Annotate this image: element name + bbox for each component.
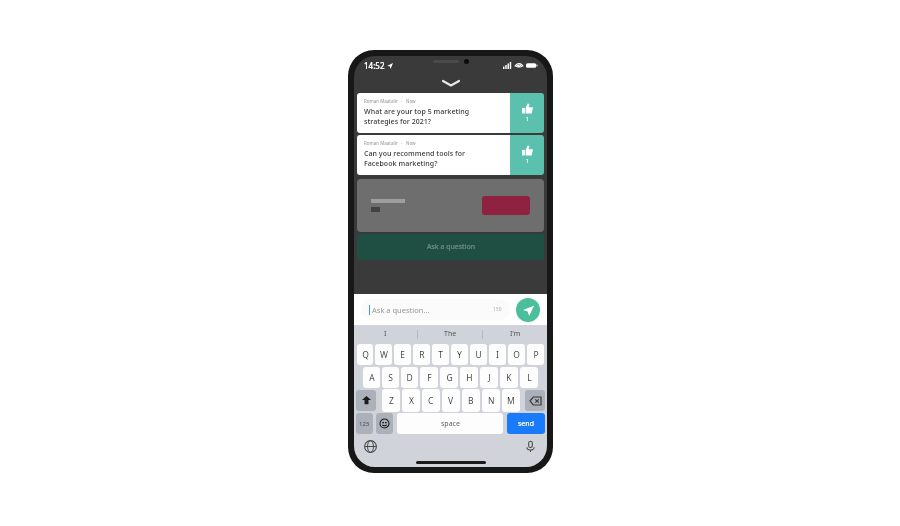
staticText: 1 (526, 116, 529, 123)
button[interactable]: T (432, 344, 449, 365)
button[interactable]: L (520, 367, 538, 388)
staticText: A (369, 372, 375, 384)
button[interactable]: O (508, 344, 525, 365)
staticText: I (496, 349, 499, 361)
button[interactable]: X (402, 389, 420, 412)
staticText: Z (389, 395, 394, 407)
button[interactable]: N (482, 389, 500, 412)
button[interactable]: I'm (483, 325, 547, 343)
button[interactable]: Shift (356, 390, 376, 411)
button[interactable]: A (363, 367, 380, 388)
staticText: Facebook marketing? (364, 159, 438, 169)
staticText: The (444, 329, 457, 339)
staticText: Ask a question (427, 242, 475, 252)
staticText: L (527, 372, 532, 384)
button[interactable]: Roman Maatalir (357, 93, 544, 133)
button[interactable]: Z (382, 389, 400, 412)
button[interactable]: E (394, 344, 411, 365)
button[interactable]: Q (357, 344, 373, 365)
staticText: Ask a question... (372, 305, 430, 315)
staticText: Can you recommend tools for (364, 149, 466, 159)
staticText: space (441, 419, 460, 429)
button[interactable]: Dictation (524, 440, 537, 453)
staticText: What are your top 5 marketing (364, 107, 470, 117)
button[interactable]: K (500, 367, 518, 388)
staticText: R (419, 349, 425, 361)
staticText: send (518, 419, 534, 429)
staticText: E (400, 349, 405, 361)
staticText: P (533, 349, 539, 361)
staticText: 123 (359, 420, 370, 428)
staticText: Q (362, 349, 369, 361)
staticText: Now (406, 140, 416, 146)
button[interactable]: F (420, 367, 438, 388)
button[interactable]: send (507, 413, 545, 434)
staticText: O (513, 349, 520, 361)
button[interactable]: U (470, 344, 487, 365)
staticText: M (507, 395, 515, 407)
button[interactable]: 123 (356, 413, 373, 434)
button[interactable]: P (527, 344, 544, 365)
staticText: I (384, 329, 387, 339)
button[interactable]: C (422, 389, 440, 412)
button[interactable]: Backspace (525, 390, 545, 411)
button[interactable]: R (413, 344, 430, 365)
staticText: G (446, 372, 453, 384)
staticText: S (388, 372, 393, 384)
staticText: J (488, 372, 491, 384)
button[interactable]: Ask a question... (369, 299, 502, 320)
staticText: · (401, 98, 403, 104)
other: Upvote (510, 93, 544, 133)
button[interactable]: H (460, 367, 478, 388)
staticText: 14:52 (364, 60, 385, 71)
button[interactable]: Emoji (376, 413, 393, 434)
staticText: T (438, 349, 443, 361)
button[interactable]: D (401, 367, 418, 388)
button[interactable]: M (502, 389, 520, 412)
staticText: N (488, 395, 495, 407)
staticText: V (448, 395, 454, 407)
button[interactable]: Y (451, 344, 468, 365)
button[interactable]: B (462, 389, 480, 412)
staticText: Y (457, 349, 462, 361)
staticText: 1 (526, 158, 529, 165)
staticText: 150 (493, 306, 502, 313)
button[interactable]: J (480, 367, 498, 388)
button[interactable] (482, 196, 530, 215)
other: Upvote (510, 135, 544, 175)
staticText: K (506, 372, 512, 384)
button[interactable]: Ask a question (357, 234, 544, 260)
button[interactable]: Change keyboard (364, 440, 377, 453)
button[interactable]: space (397, 413, 503, 434)
button[interactable]: I (489, 344, 506, 365)
staticText: Now (406, 98, 416, 104)
staticText: C (428, 395, 434, 407)
button[interactable]: V (442, 389, 460, 412)
staticText: B (468, 395, 474, 407)
staticText: W (380, 349, 388, 361)
button[interactable]: Send (516, 298, 540, 322)
button[interactable]: The (418, 325, 482, 343)
button[interactable]: W (375, 344, 392, 365)
staticText: I'm (510, 329, 521, 339)
staticText: · (401, 140, 403, 146)
staticText: strategies for 2021? (364, 117, 431, 127)
staticText: X (409, 395, 414, 407)
staticText: U (475, 349, 482, 361)
button[interactable]: I (354, 325, 417, 343)
button[interactable]: Roman Maatalir (357, 135, 544, 175)
button[interactable]: S (382, 367, 399, 388)
staticText: D (406, 372, 413, 384)
staticText: H (466, 372, 473, 384)
staticText: Roman Maatalir (364, 98, 398, 104)
staticText: F (427, 372, 432, 384)
button[interactable]: G (440, 367, 458, 388)
staticText: Roman Maatalir (364, 140, 398, 146)
